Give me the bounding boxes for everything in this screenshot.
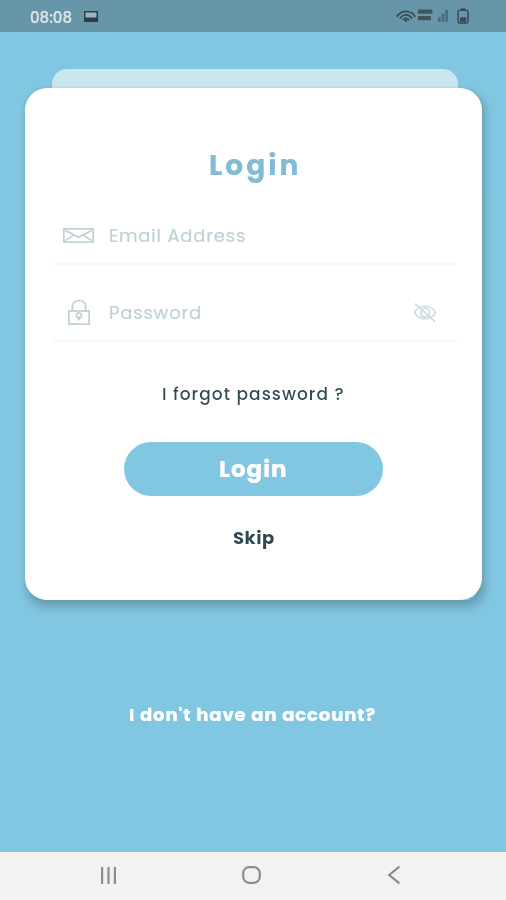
button[interactable]: Password [52,290,457,334]
button[interactable]: Login [124,442,383,496]
button[interactable]: Back [350,851,438,899]
button[interactable]: Skip [233,525,275,550]
button[interactable]: Email Address [52,214,457,256]
staticText: Password [109,300,202,325]
button[interactable]: Home [207,851,295,899]
button[interactable]: I don't have an account? [129,702,377,727]
button[interactable]: Show password [405,292,445,332]
staticText: 08:08 [30,7,73,28]
staticText: Login [209,146,302,185]
button[interactable]: I forgot password ? [162,382,345,406]
staticText: Login [219,453,288,485]
button[interactable]: Recent apps [64,851,152,899]
staticText: Email Address [109,223,247,248]
